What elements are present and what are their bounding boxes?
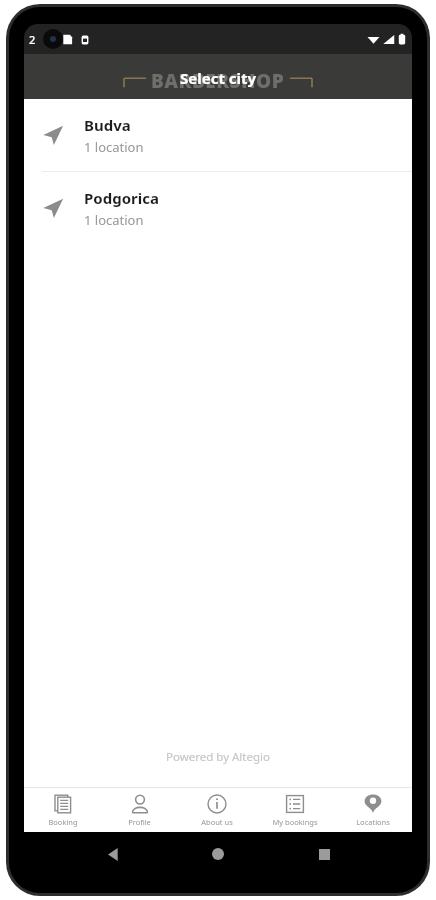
button[interactable]: Budva — [24, 99, 412, 171]
staticText: My bookings — [272, 817, 318, 827]
staticText: Podgorica — [84, 188, 159, 208]
staticText: Select city — [180, 68, 257, 88]
staticText: 1 location — [84, 211, 144, 229]
staticText: Locations — [356, 817, 390, 827]
button[interactable]: My bookings — [256, 788, 334, 832]
button[interactable]: Profile — [101, 788, 178, 832]
staticText: Booking — [48, 817, 78, 827]
button[interactable]: Home — [201, 837, 235, 871]
button[interactable]: Back — [96, 837, 130, 871]
button[interactable]: Recent apps — [307, 837, 341, 871]
button[interactable]: Booking — [24, 788, 101, 832]
button[interactable]: Podgorica — [24, 172, 412, 244]
staticText: Budva — [84, 115, 131, 135]
staticText: BARBERSHOP — [151, 68, 285, 94]
staticText: About us — [201, 817, 233, 827]
staticText: 2 — [29, 32, 36, 47]
staticText: Profile — [128, 817, 151, 827]
staticText: Powered by Altegio — [24, 749, 412, 765]
button[interactable]: Locations — [334, 788, 412, 832]
button[interactable]: About us — [178, 788, 256, 832]
staticText: 1 location — [84, 138, 144, 156]
